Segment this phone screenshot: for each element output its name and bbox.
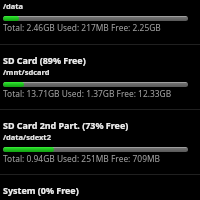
staticText: Total: 13.71GB Used: 1.37GB Free: 12.33G… <box>3 88 172 99</box>
staticText: SD Card 2nd Part. (73% Free) <box>3 119 129 131</box>
staticText: /mnt/sdcard <box>3 67 50 77</box>
staticText: System (0% Free) <box>3 184 79 196</box>
staticText: /data <box>3 1 24 11</box>
staticText: Total: 0.94GB Used: 251MB Free: 709MB <box>3 153 161 164</box>
staticText: /data/sdext2 <box>3 132 51 142</box>
staticText: Total: 2.46GB Used: 217MB Free: 2.25GB <box>3 22 161 33</box>
staticText: SD Card (89% Free) <box>3 54 86 66</box>
button[interactable] <box>0 45 200 109</box>
button[interactable] <box>0 0 200 44</box>
button[interactable] <box>0 110 200 174</box>
button[interactable] <box>0 175 200 200</box>
